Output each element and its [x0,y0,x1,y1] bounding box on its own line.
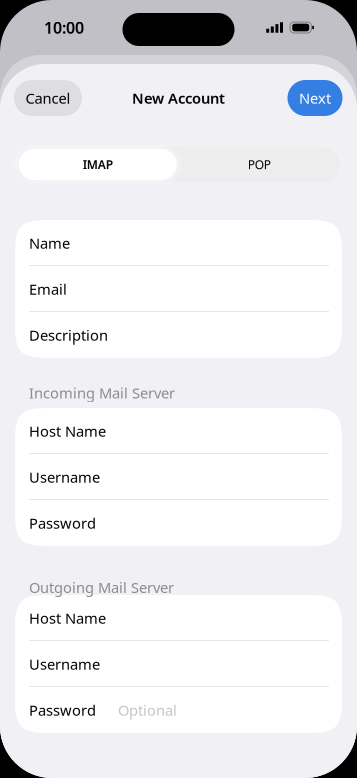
button[interactable]: Cancel [14,80,82,116]
button[interactable]: Host Name [15,595,342,641]
staticText: 10:00 [44,17,84,38]
staticText: Username [29,654,100,674]
staticText: Outgoing Mail Server [29,577,174,597]
staticText: Host Name [29,421,106,441]
button[interactable]: Username [15,454,342,500]
staticText: IMAP [83,156,113,172]
staticText: POP [248,156,271,172]
staticText: Cancel [25,88,70,108]
staticText: Next [299,88,331,108]
button[interactable]: Password [15,500,342,546]
staticText: Password [29,700,96,720]
staticText: Incoming Mail Server [29,383,175,402]
button[interactable]: Password [15,687,342,733]
button[interactable]: Username [15,641,342,687]
staticText: Optional [118,700,177,720]
staticText: Host Name [29,608,106,628]
staticText: Password [29,513,96,533]
staticText: Username [29,467,100,487]
button[interactable]: POP [178,147,340,182]
staticText: New Account [132,88,225,108]
button[interactable]: IMAP [17,147,178,182]
button[interactable]: Next [287,80,342,116]
staticText: Description [29,325,108,345]
button[interactable]: Description [15,312,342,358]
button[interactable]: Name [15,220,342,266]
staticText: Name [29,233,70,253]
staticText: Email [29,279,67,299]
button[interactable]: Email [15,266,342,312]
button[interactable]: Host Name [15,408,342,454]
